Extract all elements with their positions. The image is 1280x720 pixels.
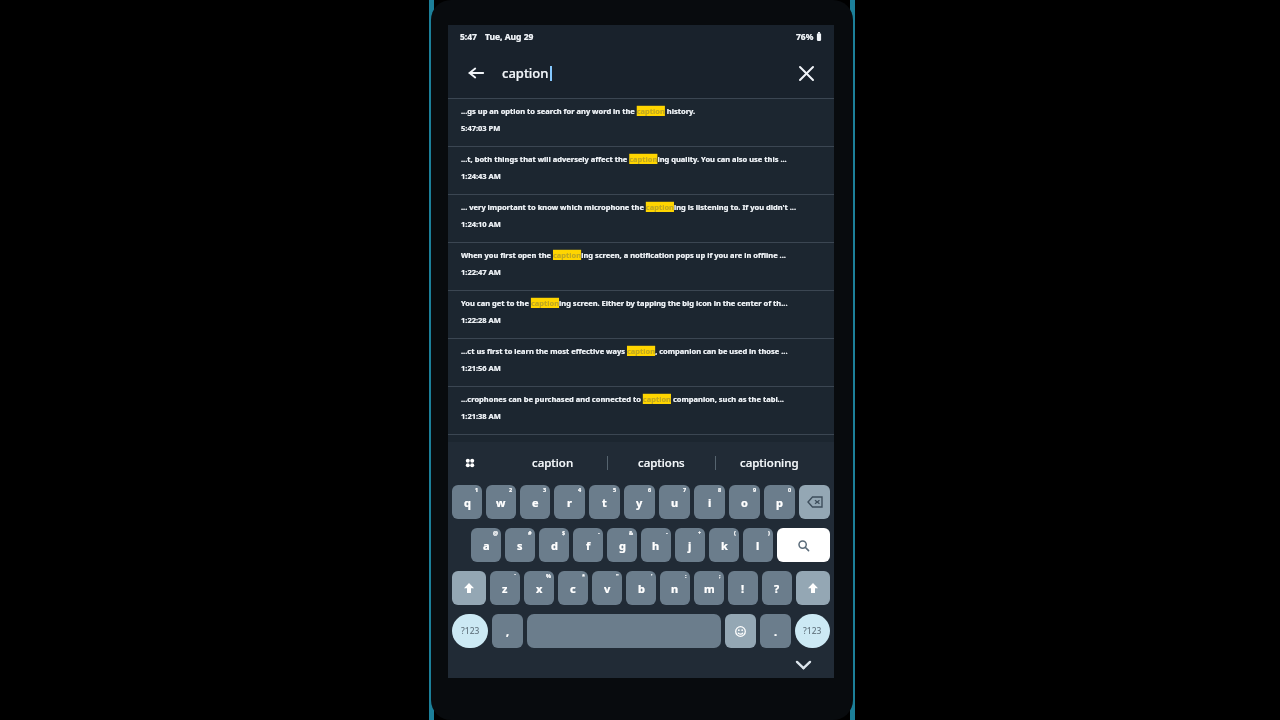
staticText: l [756, 538, 760, 553]
staticText: * [582, 572, 585, 579]
button[interactable]: j [675, 528, 705, 562]
staticText: v [604, 581, 611, 596]
button[interactable]: a [471, 528, 501, 562]
staticText: + [698, 529, 702, 536]
button[interactable]: d [539, 528, 569, 562]
button[interactable]: e [520, 485, 550, 519]
button[interactable]: Space [527, 614, 721, 648]
staticText: You can get to the captioning screen. Ei… [461, 298, 788, 308]
staticText: f [586, 538, 591, 553]
staticText: : [685, 572, 687, 579]
staticText: x [536, 581, 543, 596]
button[interactable]: captioning [716, 442, 823, 483]
button[interactable]: caption [499, 442, 607, 483]
staticText: 1 [475, 486, 479, 493]
staticText: o [741, 495, 748, 510]
button[interactable]: r [554, 485, 585, 519]
button[interactable]: ...crophones can be purchased and connec… [448, 387, 834, 434]
staticText: e [532, 495, 539, 510]
staticText: 5 [613, 486, 617, 493]
staticText: s [517, 538, 523, 553]
staticText: 3 [543, 486, 547, 493]
button[interactable]: m [694, 571, 724, 605]
staticText: - [598, 529, 600, 536]
button[interactable]: i [694, 485, 725, 519]
staticText: captions [638, 455, 685, 471]
button[interactable]: c [558, 571, 588, 605]
button[interactable]: ...gs up an option to search for any wor… [448, 99, 834, 146]
staticText: p [776, 495, 783, 510]
button[interactable]: captions [608, 442, 715, 483]
button[interactable]: t [589, 485, 620, 519]
staticText: ?123 [461, 625, 480, 637]
staticText: 9 [753, 486, 757, 493]
button[interactable]: Hide keyboard [792, 653, 814, 675]
staticText: w [496, 495, 506, 510]
staticText: y [636, 495, 643, 510]
button[interactable]: Shift right [796, 571, 830, 605]
button[interactable]: p [764, 485, 795, 519]
button[interactable]: ...ct us first to learn the most effecti… [448, 339, 834, 386]
button[interactable]: l [743, 528, 773, 562]
staticText: ... very important to know which microph… [461, 202, 797, 212]
button[interactable]: You can get to the captioning screen. Ei… [448, 291, 834, 338]
button[interactable]: s [505, 528, 535, 562]
button[interactable]: n [660, 571, 690, 605]
staticText: . [774, 624, 778, 639]
button[interactable]: Search [777, 528, 830, 562]
staticText: 76% [796, 31, 814, 43]
staticText: ...ct us first to learn the most effecti… [461, 346, 788, 356]
staticText: , [506, 624, 510, 639]
staticText: ' [651, 572, 653, 579]
button[interactable]: k [709, 528, 739, 562]
button[interactable]: ...t, both things that will adversely af… [448, 147, 834, 194]
staticText: t [602, 495, 607, 510]
staticText: z [502, 581, 508, 596]
button[interactable]: o [729, 485, 760, 519]
staticText: & [629, 529, 634, 536]
staticText: 1:21:56 AM [461, 363, 501, 373]
button[interactable]: Backspace [799, 485, 830, 519]
staticText: c [570, 581, 576, 596]
staticText: ? [774, 581, 780, 596]
button[interactable]: ?123 [795, 614, 830, 648]
button[interactable]: ?123 [452, 614, 488, 648]
staticText: ...gs up an option to search for any wor… [461, 106, 696, 116]
button[interactable]: w [486, 485, 516, 519]
button[interactable]: ? [762, 571, 792, 605]
button[interactable]: f [573, 528, 603, 562]
button[interactable]: . [760, 614, 791, 648]
button[interactable]: Back [461, 58, 491, 88]
button[interactable]: Emoji [725, 614, 756, 648]
button[interactable]: ! [728, 571, 758, 605]
button[interactable]: Shift [452, 571, 486, 605]
button[interactable]: q [452, 485, 482, 519]
button[interactable]: b [626, 571, 656, 605]
staticText: a [483, 538, 490, 553]
staticText: r [567, 495, 572, 510]
staticText: 4 [578, 486, 582, 493]
staticText: ...t, both things that will adversely af… [461, 154, 787, 164]
button[interactable]: , [492, 614, 523, 648]
button[interactable]: u [659, 485, 690, 519]
staticText: ; [719, 572, 721, 579]
staticText: - [666, 529, 668, 536]
button[interactable]: g [607, 528, 637, 562]
staticText: 5:47 [460, 31, 477, 43]
staticText: 8 [718, 486, 722, 493]
button[interactable]: Clear search [791, 58, 821, 88]
staticText: d [551, 538, 558, 553]
button[interactable]: Keyboard options [459, 452, 481, 474]
staticText: caption [502, 64, 549, 82]
button[interactable]: v [592, 571, 622, 605]
staticText: h [652, 538, 660, 553]
staticText: q [464, 495, 471, 510]
staticText: " [616, 572, 619, 579]
button[interactable]: h [641, 528, 671, 562]
staticText: # [528, 529, 532, 536]
button[interactable]: y [624, 485, 655, 519]
button[interactable]: x [524, 571, 554, 605]
button[interactable]: ... very important to know which microph… [448, 195, 834, 242]
button[interactable]: When you first open the captioning scree… [448, 243, 834, 290]
button[interactable]: z [490, 571, 520, 605]
